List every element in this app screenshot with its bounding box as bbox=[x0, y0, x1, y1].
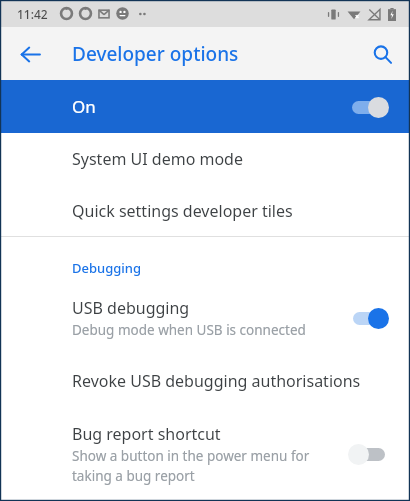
button[interactable]: Off bbox=[348, 441, 394, 467]
button[interactable]: On bbox=[0, 80, 410, 133]
staticText: Quick settings developer tiles bbox=[72, 200, 293, 222]
staticText: On bbox=[72, 95, 96, 118]
staticText: Show a button in the power menu for taki… bbox=[72, 447, 310, 485]
button[interactable]: USB debugging bbox=[0, 283, 410, 353]
button[interactable]: Revoke USB debugging authorisations bbox=[0, 353, 410, 409]
staticText: Revoke USB debugging authorisations bbox=[72, 370, 361, 392]
button[interactable]: Back bbox=[10, 34, 50, 74]
staticText: Bug report shortcut bbox=[72, 423, 221, 445]
staticText: USB debugging bbox=[72, 297, 190, 319]
staticText: Debugging bbox=[72, 259, 142, 277]
staticText: Debug mode when USB is connected bbox=[72, 321, 306, 339]
staticText: Developer options bbox=[72, 41, 239, 67]
button[interactable]: Bug report shortcut bbox=[0, 409, 410, 499]
staticText: 11:42 bbox=[17, 6, 48, 22]
button[interactable]: Quick settings developer tiles bbox=[0, 185, 410, 236]
button[interactable]: Search bbox=[362, 34, 402, 74]
button[interactable]: On bbox=[348, 305, 394, 331]
button[interactable]: System UI demo mode bbox=[0, 133, 410, 185]
staticText: System UI demo mode bbox=[72, 148, 243, 170]
